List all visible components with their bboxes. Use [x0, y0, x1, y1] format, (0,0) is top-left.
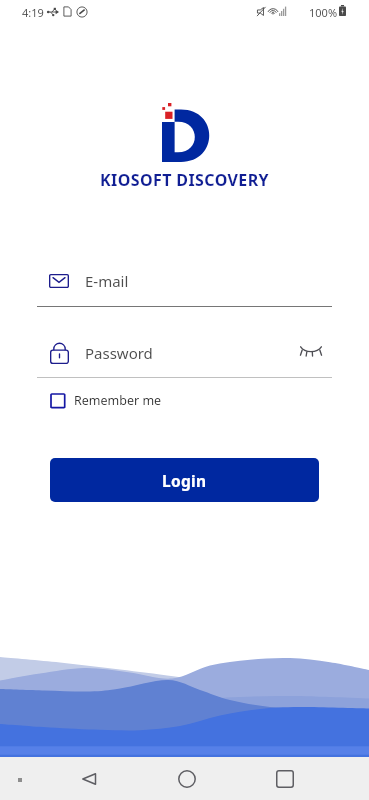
staticText: Login	[162, 470, 207, 491]
staticText: KIOSOFT DISCOVERY	[100, 169, 270, 191]
staticText: 100%	[309, 5, 338, 20]
staticText: 4:19	[22, 5, 44, 20]
button[interactable]: Recents	[262, 762, 307, 795]
button[interactable]: Login	[50, 458, 319, 502]
staticText: E-mail	[85, 271, 129, 291]
staticText: Password	[85, 343, 153, 363]
staticText: Remember me	[74, 392, 162, 409]
button[interactable]: Home	[164, 762, 209, 795]
button[interactable]: Show password	[295, 335, 326, 366]
button[interactable]: Back	[66, 762, 111, 795]
button[interactable]: Remember me	[50, 392, 162, 409]
